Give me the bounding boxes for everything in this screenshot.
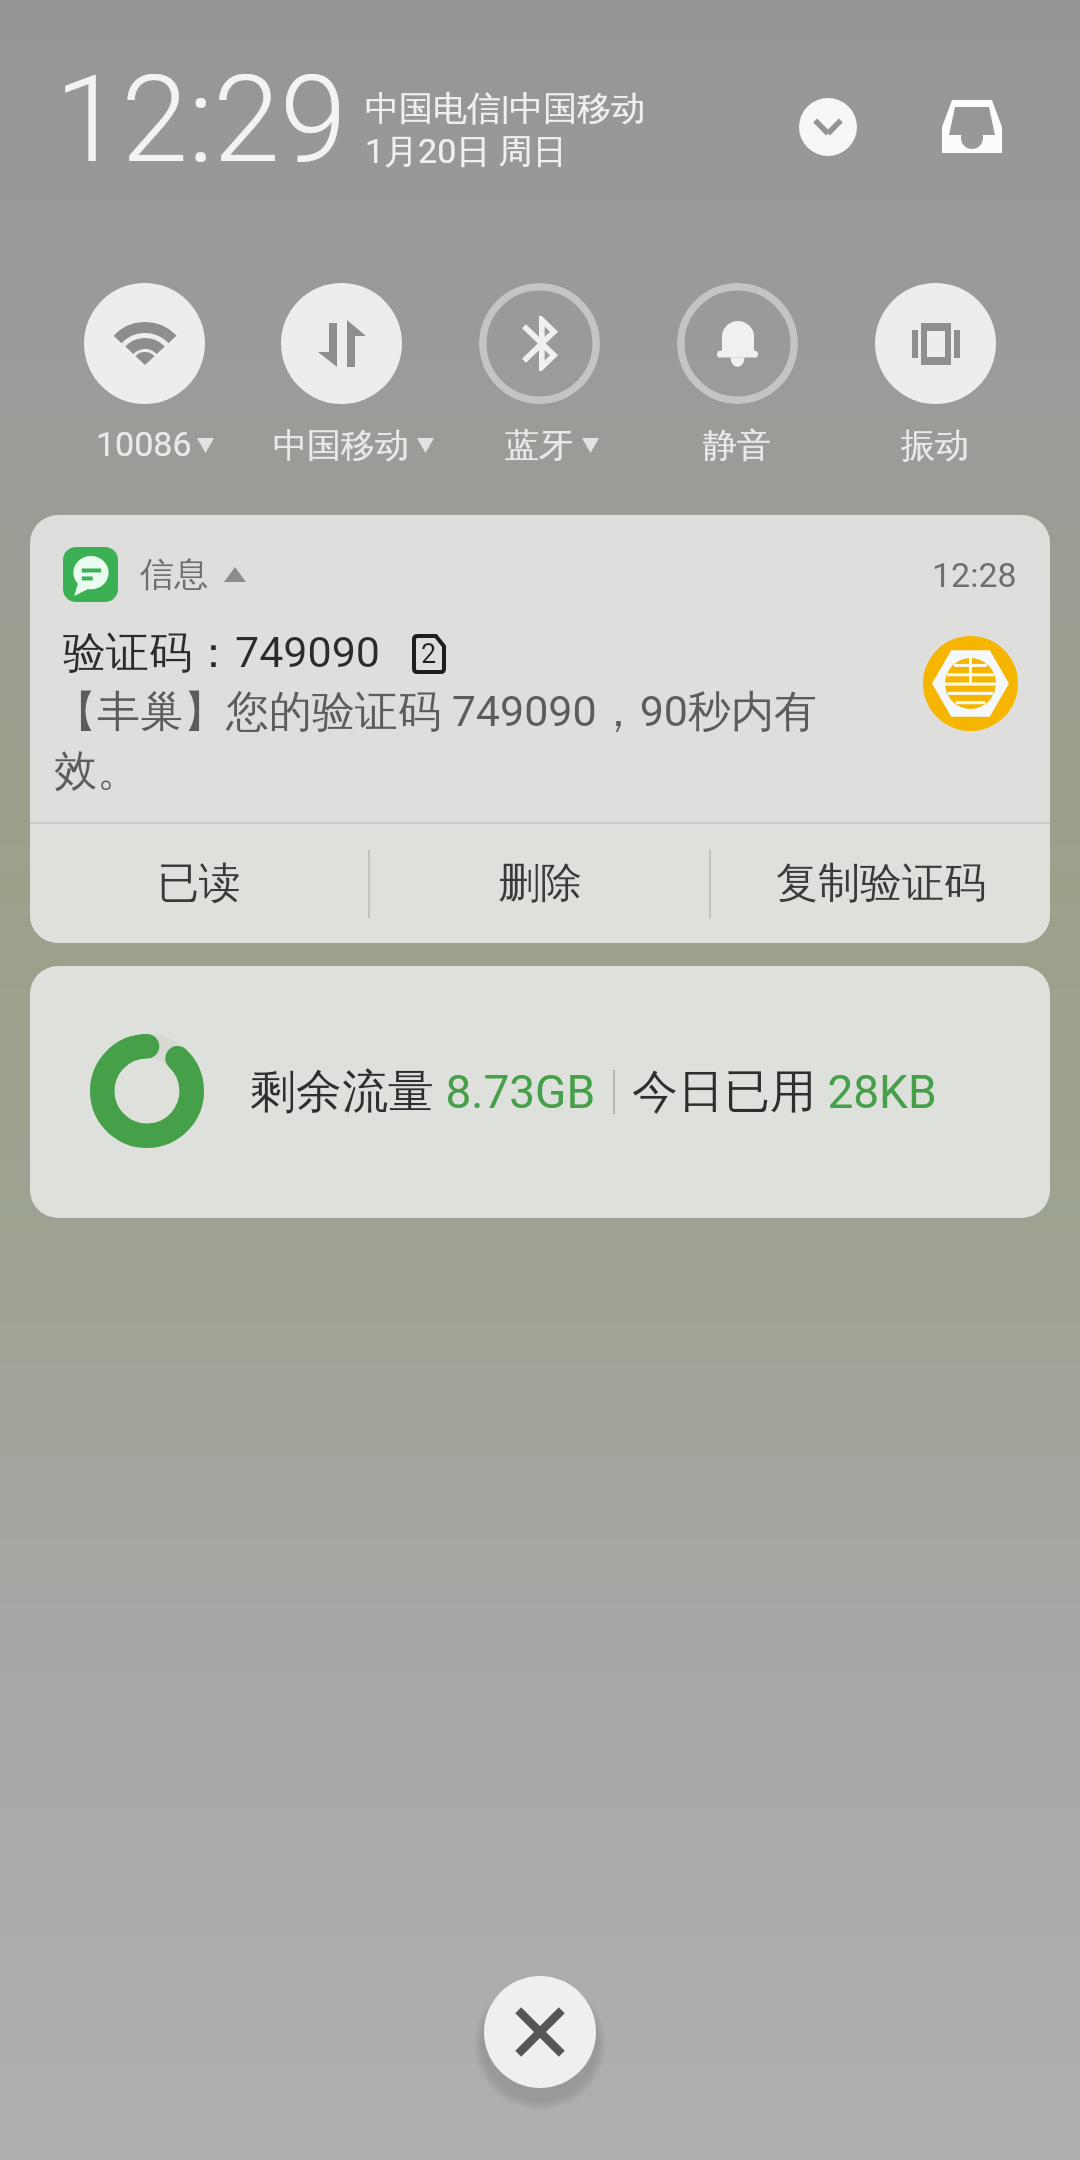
button[interactable]: 已读 bbox=[30, 824, 368, 943]
staticText: 信息 bbox=[140, 553, 208, 596]
staticText: 今日已用 bbox=[632, 1063, 816, 1121]
staticText: 12:29 bbox=[55, 50, 347, 191]
button[interactable]: 蓝牙 bbox=[441, 283, 637, 464]
staticText: 【丰巢】您的验证码 749090，90秒内有效。 bbox=[54, 685, 844, 798]
button[interactable]: 信息 bbox=[30, 515, 1050, 943]
staticText: 振动 bbox=[901, 424, 969, 464]
button[interactable]: 10086 bbox=[46, 283, 242, 464]
staticText: 12:28 bbox=[932, 555, 1017, 595]
button[interactable]: Expand bbox=[799, 98, 857, 156]
staticText: 删除 bbox=[498, 857, 582, 910]
staticText: 静音 bbox=[703, 424, 771, 464]
button[interactable]: 删除 bbox=[370, 824, 709, 943]
staticText: 蓝牙 bbox=[505, 424, 573, 464]
button[interactable]: 振动 bbox=[837, 283, 1033, 464]
staticText: 8.73GB bbox=[434, 1065, 596, 1119]
button[interactable]: 剩余流量 bbox=[30, 966, 1050, 1218]
button[interactable]: 复制验证码 bbox=[711, 824, 1050, 943]
staticText: 1月20日 周日 bbox=[365, 130, 567, 173]
button[interactable]: 中国移动 bbox=[243, 283, 439, 464]
staticText: 28KB bbox=[816, 1065, 937, 1119]
staticText: 验证码：749090 bbox=[63, 626, 380, 680]
staticText: 中国移动 bbox=[273, 424, 409, 464]
staticText: 10086 bbox=[96, 424, 192, 464]
button[interactable]: Close bbox=[484, 1976, 596, 2088]
staticText: 复制验证码 bbox=[776, 857, 986, 910]
staticText: 已读 bbox=[157, 857, 241, 910]
staticText: 2 bbox=[421, 638, 437, 670]
button[interactable]: 静音 bbox=[639, 283, 835, 464]
button[interactable]: Notifications bbox=[935, 86, 1009, 167]
staticText: 中国电信|中国移动 bbox=[365, 87, 646, 130]
staticText: 剩余流量 bbox=[250, 1063, 434, 1121]
